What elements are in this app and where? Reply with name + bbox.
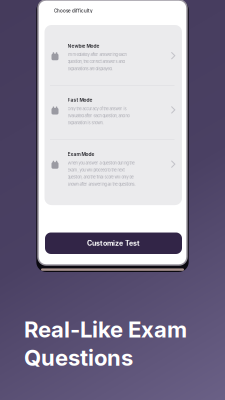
staticText: Questions bbox=[24, 344, 133, 371]
staticText: Exam Mode bbox=[67, 151, 94, 157]
staticText: Only the accuracy of the answer is evalu… bbox=[67, 106, 129, 125]
button[interactable]: Customize Test bbox=[45, 232, 182, 254]
button[interactable]: Fast Mode bbox=[44, 86, 182, 139]
staticText: Fast Mode bbox=[67, 97, 92, 103]
staticText: Choose difficulty bbox=[54, 8, 93, 13]
staticText: Customize Test bbox=[87, 239, 140, 247]
staticText: Newbie Mode bbox=[67, 43, 99, 49]
staticText: Real-Like Exam bbox=[24, 316, 187, 343]
button[interactable]: Exam Mode bbox=[44, 140, 182, 205]
staticText: Immediately after answering each questio… bbox=[67, 52, 126, 71]
button[interactable]: Newbie Mode bbox=[44, 25, 182, 85]
staticText: When you answer a question during the ex… bbox=[67, 161, 135, 187]
